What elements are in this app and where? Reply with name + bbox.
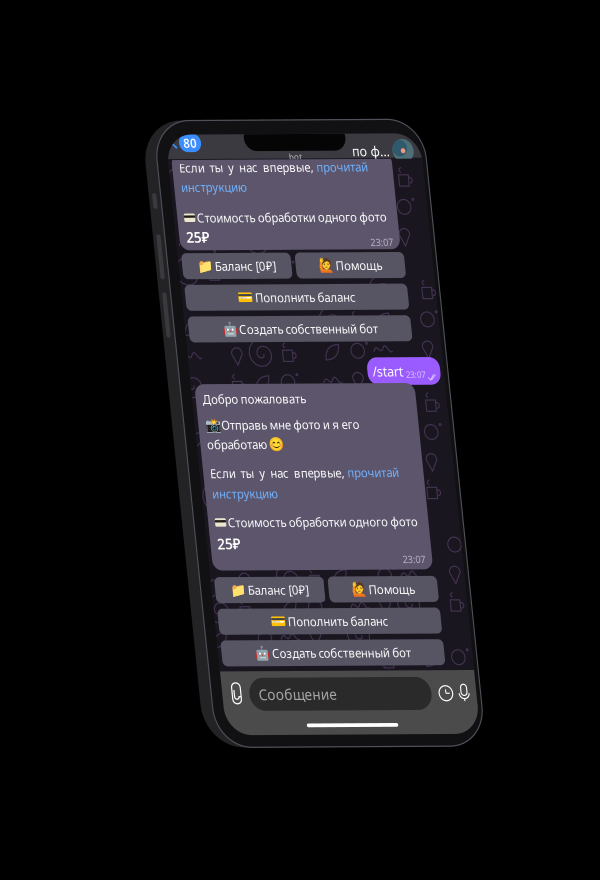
button[interactable]: 💳 [4, 505, 267, 533]
staticText: /start [216, 243, 252, 263]
staticText: Создать собственный бот [63, 199, 227, 216]
staticText: Помощь [185, 131, 240, 149]
staticText: Отправь мне фото и я его [31, 301, 194, 318]
button[interactable]: Schedule message [247, 589, 279, 605]
button[interactable]: 🤖 [4, 194, 267, 221]
staticText: Помощь [185, 477, 240, 494]
staticText: 23:07 [229, 108, 256, 123]
button[interactable]: Record voice message [279, 587, 300, 606]
staticText: 23:07 [229, 446, 256, 461]
staticText: 23:07 [255, 250, 278, 263]
button[interactable]: 🤖 [4, 539, 267, 567]
staticText: Если ты у нас впервые, [12, 352, 174, 370]
staticText: Стоимость обработки одного фото [27, 404, 251, 422]
button[interactable]: 💳 [4, 160, 267, 188]
staticText: Создать собственный бот [63, 544, 227, 562]
staticText: прочитай [174, 352, 235, 370]
button[interactable]: /start [210, 238, 296, 268]
button[interactable]: 🙋 [138, 126, 267, 154]
staticText: 🙋 [165, 477, 183, 494]
staticText: 🙋 [165, 132, 183, 149]
staticText: Пополнить баланс [86, 165, 205, 183]
staticText: Пополнить баланс [86, 510, 205, 528]
button[interactable]: 🙋 [138, 472, 267, 499]
